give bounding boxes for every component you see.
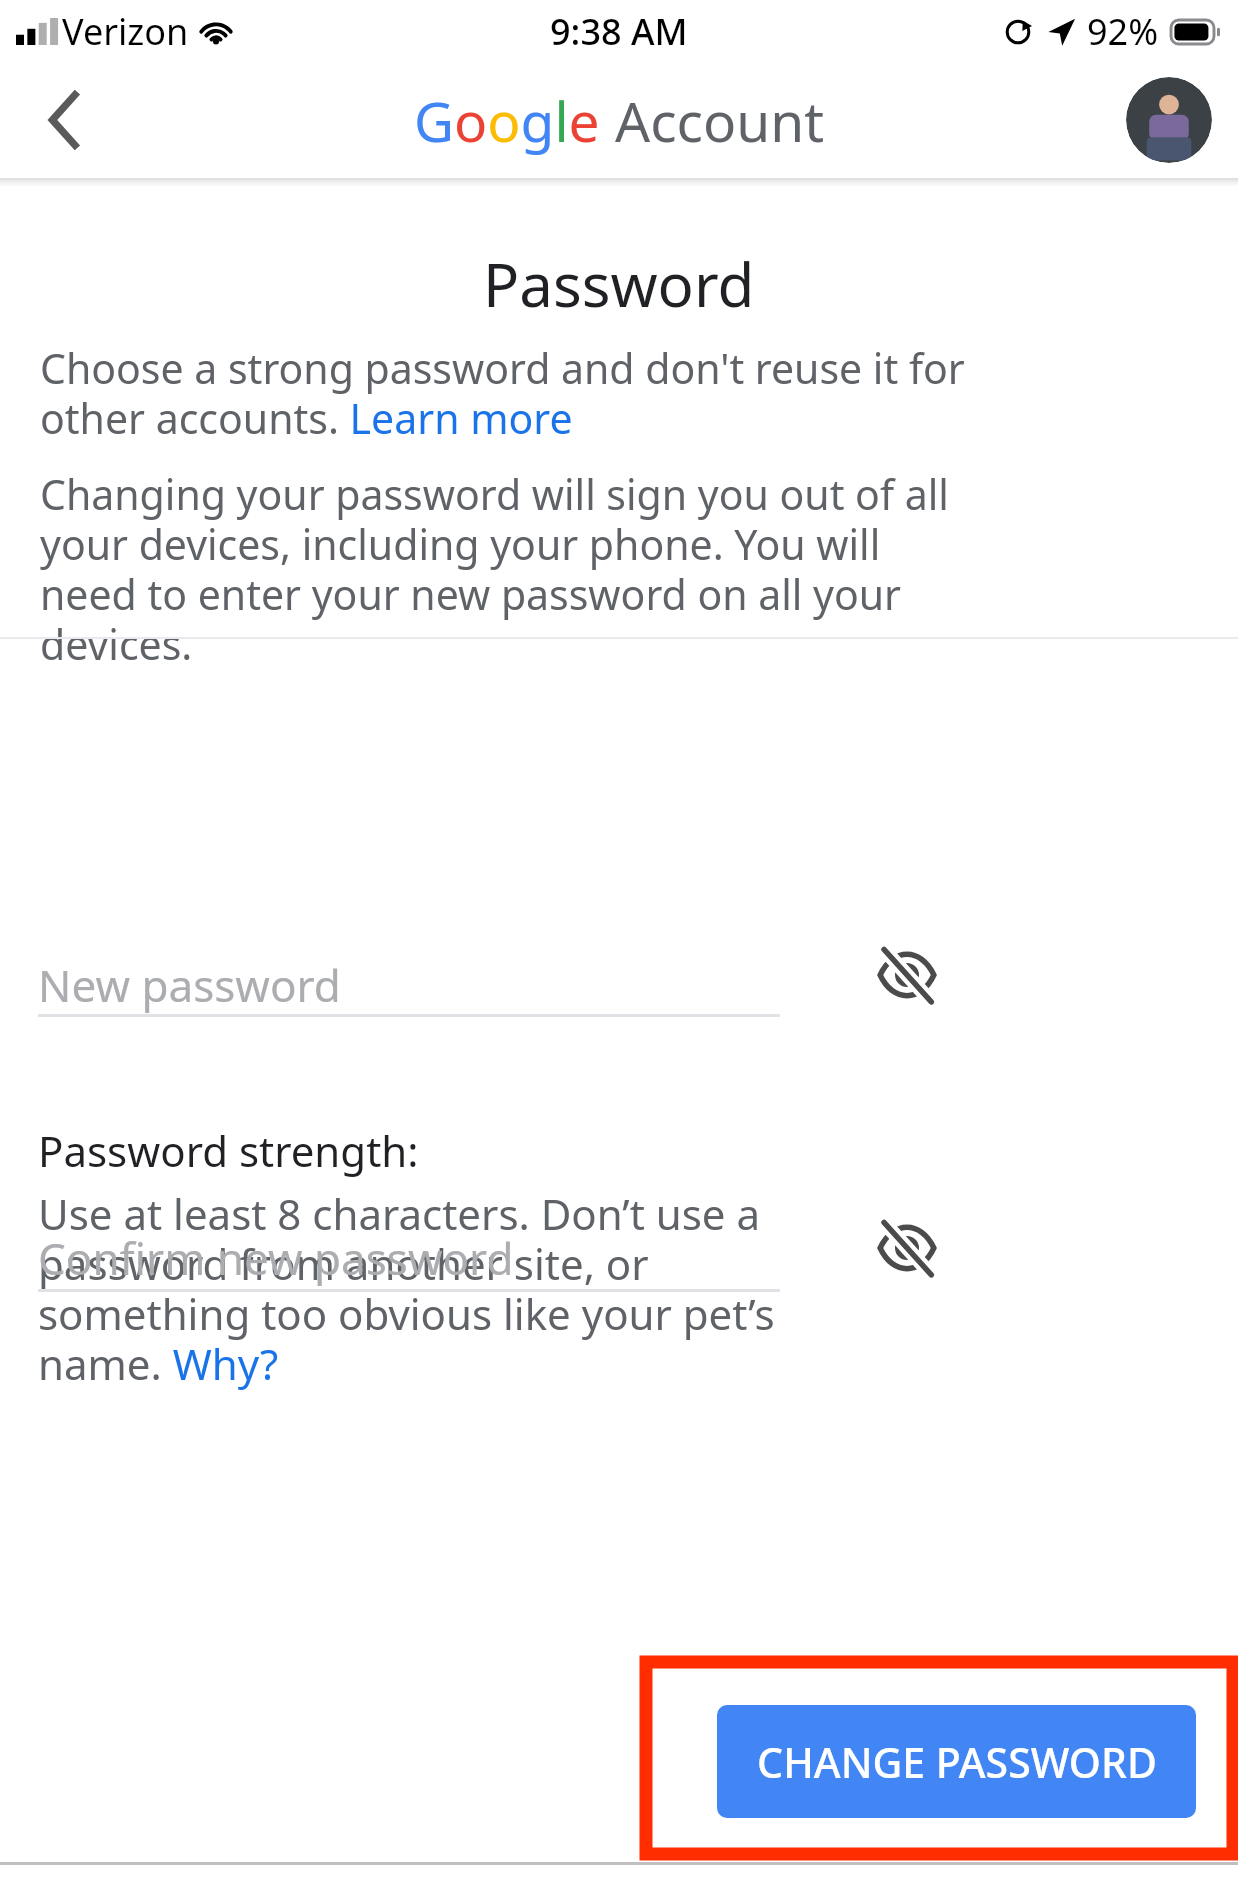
staticText: Verizon: [62, 7, 189, 56]
button[interactable]: Show confirm password: [872, 1213, 942, 1283]
staticText: Changing your password will sign you out…: [40, 466, 965, 672]
button[interactable]: Confirm new password: [38, 1228, 798, 1290]
staticText: 9:38 AM: [550, 7, 688, 56]
staticText: Google: [414, 83, 600, 158]
staticText: Use at least 8 characters. Don’t use a p…: [38, 1185, 803, 1393]
staticText: CHANGE PASSWORD: [757, 1734, 1157, 1790]
staticText: Choose a strong password and don't reuse…: [40, 340, 965, 446]
button[interactable]: Back: [26, 80, 106, 160]
staticText: 92%: [1087, 7, 1159, 56]
staticText: Account: [615, 83, 825, 158]
button[interactable]: New password: [38, 955, 798, 1017]
staticText: Password: [483, 243, 755, 325]
staticText: Confirm new password: [38, 1228, 514, 1288]
staticText: Password strength:: [38, 1122, 419, 1179]
button[interactable]: CHANGE PASSWORD: [717, 1705, 1196, 1818]
button[interactable]: Google Account profile: [1126, 77, 1212, 163]
staticText: New password: [38, 955, 341, 1015]
button[interactable]: Show new password: [872, 940, 942, 1010]
